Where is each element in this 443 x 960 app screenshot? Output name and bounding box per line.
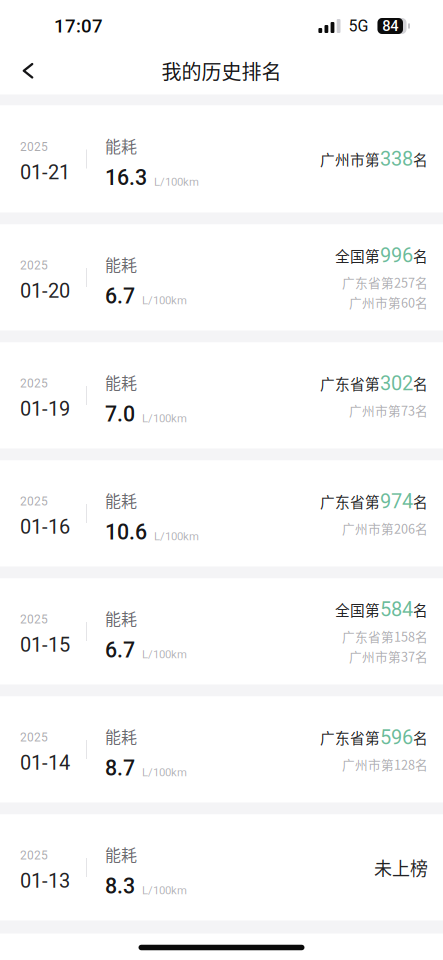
staticText: 8.7 [105,756,135,781]
staticText: 84 [382,17,398,35]
staticText: 能耗 [105,842,137,866]
staticText: 2025 [20,730,48,744]
button[interactable]: 2025 [0,224,443,330]
staticText: 未上榜 [374,854,428,881]
staticText: 7.0 [105,402,135,427]
staticText: L/100km [142,648,187,661]
staticText: 能耗 [105,488,137,512]
staticText: 2025 [20,494,48,508]
staticText: 6.7 [105,638,135,663]
button[interactable]: Back [7,49,49,93]
button[interactable]: 2025 [0,696,443,802]
staticText: 能耗 [105,724,137,748]
staticText: 01-20 [20,279,70,303]
button[interactable]: 2025 [0,814,443,920]
staticText: 01-21 [20,161,70,184]
staticText: 名 [413,599,428,620]
staticText: 广东省第 [320,373,380,394]
staticText: 全国第 [335,599,380,620]
staticText: 全国第 [335,245,380,266]
button[interactable]: 2025 [0,460,443,566]
staticText: 302 [380,372,413,395]
staticText: 广州市第37名 [349,647,428,665]
staticText: 广东省第158名 [342,627,428,645]
staticText: L/100km [142,884,187,897]
staticText: 广州市第 [320,148,380,170]
staticText: L/100km [142,766,187,779]
staticText: 6.7 [105,284,135,309]
button[interactable]: 2025 [0,342,443,448]
staticText: 16.3 [105,165,147,190]
staticText: 名 [413,491,428,512]
staticText: 能耗 [105,252,137,276]
staticText: 能耗 [105,606,137,630]
staticText: 2025 [20,612,48,626]
staticText: 名 [413,245,428,266]
staticText: 5G [348,17,368,35]
button[interactable]: 2025 [0,578,443,684]
staticText: 01-15 [20,633,70,657]
staticText: 广东省第257名 [342,273,428,291]
staticText: 名 [413,148,428,170]
staticText: 01-19 [20,397,70,421]
staticText: 17:07 [54,15,103,37]
staticText: 广州市第60名 [349,293,428,311]
staticText: L/100km [154,175,199,189]
staticText: 10.6 [105,520,147,545]
staticText: 01-13 [20,869,70,893]
staticText: 2025 [20,140,48,154]
staticText: 2025 [20,848,48,862]
staticText: L/100km [154,530,199,543]
staticText: 名 [413,727,428,748]
staticText: 996 [380,244,413,267]
staticText: 01-14 [20,751,70,775]
staticText: 广东省第 [320,491,380,512]
staticText: 我的历史排名 [161,56,281,85]
staticText: 广州市第73名 [349,401,428,419]
staticText: 974 [380,490,413,513]
staticText: 2025 [20,258,48,272]
staticText: 8.3 [105,874,135,899]
staticText: 596 [380,726,413,749]
staticText: 名 [413,373,428,394]
staticText: 01-16 [20,515,70,539]
staticText: 能耗 [105,370,137,394]
staticText: 338 [380,147,413,171]
staticText: 广东省第 [320,727,380,748]
staticText: 广州市第128名 [342,755,428,773]
staticText: L/100km [142,412,187,425]
staticText: 2025 [20,376,48,390]
staticText: 广州市第206名 [342,519,428,537]
staticText: 584 [380,598,413,621]
staticText: 能耗 [105,134,137,157]
staticText: L/100km [142,294,187,307]
button[interactable]: 2025 [0,105,443,212]
